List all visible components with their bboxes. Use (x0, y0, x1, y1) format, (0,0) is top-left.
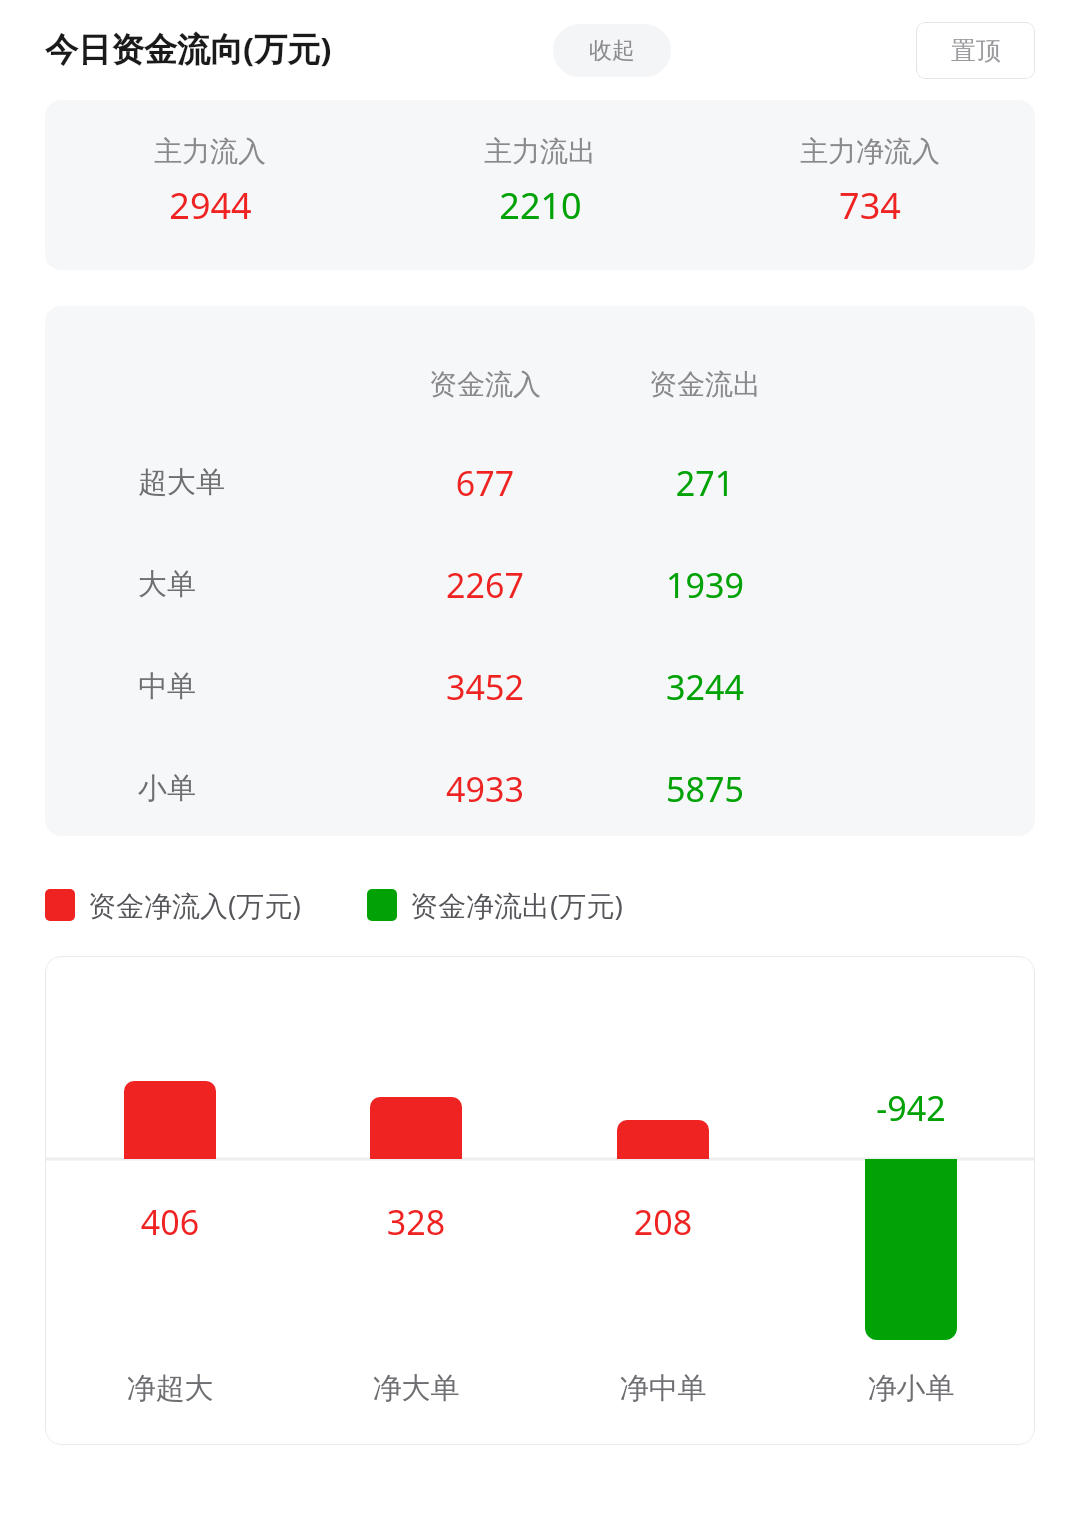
staticText: 主力流出 (484, 134, 596, 169)
button[interactable]: 资金流入 (45, 306, 1035, 836)
staticText: 大单 (138, 566, 375, 603)
staticText: 小单 (138, 770, 375, 807)
staticText: 3244 (595, 664, 815, 708)
button[interactable]: 中单 (45, 664, 1035, 708)
staticText: 资金流入 (375, 367, 595, 402)
staticText: 主力净流入 (800, 134, 940, 169)
staticText: 净超大 (100, 1370, 240, 1407)
staticText: 中单 (138, 668, 375, 705)
staticText: 4933 (375, 766, 595, 810)
staticText: 328 (356, 1199, 476, 1245)
staticText: 超大单 (138, 464, 375, 501)
staticText: 406 (110, 1199, 230, 1245)
staticText: 2944 (169, 181, 252, 230)
staticText: 5875 (595, 766, 815, 810)
button[interactable]: 收起 (553, 24, 671, 77)
button[interactable]: 超大单 (45, 460, 1035, 504)
staticText: 净中单 (593, 1370, 733, 1407)
staticText: 资金净流出(万元) (410, 886, 623, 924)
staticText: 收起 (589, 36, 635, 65)
staticText: 271 (595, 460, 815, 504)
staticText: 2267 (375, 562, 595, 606)
staticText: 3452 (375, 664, 595, 708)
staticText: 置顶 (951, 35, 1001, 66)
staticText: 2210 (499, 181, 582, 230)
staticText: 净小单 (841, 1370, 981, 1407)
button[interactable]: 置顶 (916, 22, 1035, 79)
staticText: 1939 (595, 562, 815, 606)
button[interactable]: 小单 (45, 766, 1035, 810)
staticText: 资金流出 (595, 367, 815, 402)
button[interactable]: 406 (45, 956, 1035, 1445)
staticText: 677 (375, 460, 595, 504)
button[interactable]: 大单 (45, 562, 1035, 606)
button[interactable]: 主力流入 (45, 100, 1035, 270)
staticText: 734 (839, 181, 901, 230)
staticText: 主力流入 (154, 134, 266, 169)
staticText: -942 (841, 1085, 981, 1131)
staticText: 今日资金流向(万元) (45, 26, 332, 71)
staticText: 208 (603, 1199, 723, 1245)
staticText: 净大单 (346, 1370, 486, 1407)
staticText: 资金净流入(万元) (88, 886, 301, 924)
